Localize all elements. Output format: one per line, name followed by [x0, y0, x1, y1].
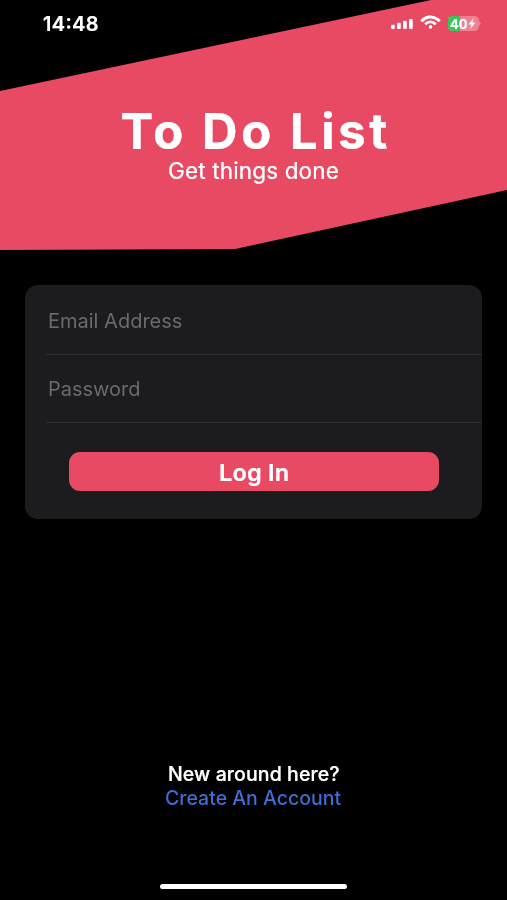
staticText: Email Address	[48, 309, 183, 333]
staticText: Get things done	[168, 157, 339, 184]
staticText: 40	[450, 16, 468, 31]
staticText: To Do List	[120, 101, 391, 161]
button[interactable]: Create An Account	[165, 786, 342, 810]
button[interactable]: Password	[25, 355, 482, 422]
staticText: New around here?	[168, 762, 340, 786]
button[interactable]: Email Address	[25, 285, 482, 354]
staticText: 14:48	[43, 12, 99, 36]
staticText: Create An Account	[165, 786, 342, 810]
staticText: Log In	[219, 458, 290, 486]
staticText: Password	[48, 377, 141, 401]
other: Cellular signal	[391, 19, 413, 29]
button[interactable]: Log In	[69, 452, 439, 491]
other: Wi-Fi	[421, 18, 440, 29]
other: Battery 40 percent, charging	[448, 16, 481, 31]
